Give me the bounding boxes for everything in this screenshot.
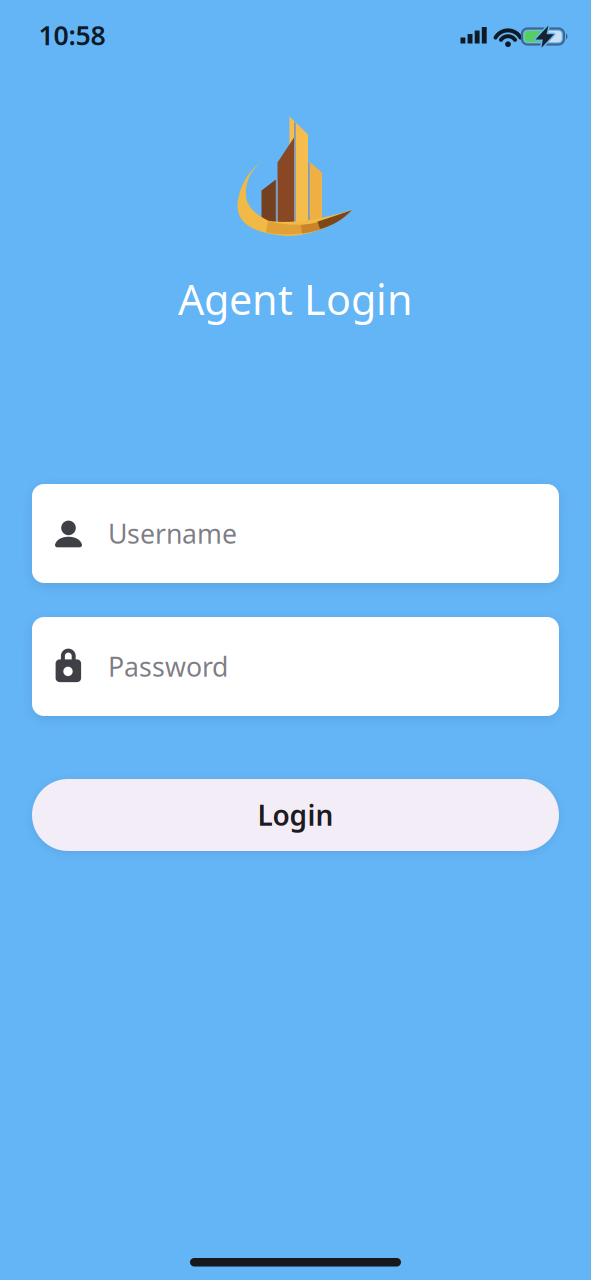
button[interactable]: Login — [32, 779, 559, 851]
staticText: Agent Login — [178, 272, 413, 326]
button[interactable]: Password — [32, 617, 559, 716]
button[interactable]: Username — [32, 484, 559, 583]
staticText: Username — [108, 516, 237, 551]
staticText: 10:58 — [38, 17, 105, 53]
staticText: Password — [108, 649, 228, 684]
staticText: Login — [257, 796, 333, 834]
